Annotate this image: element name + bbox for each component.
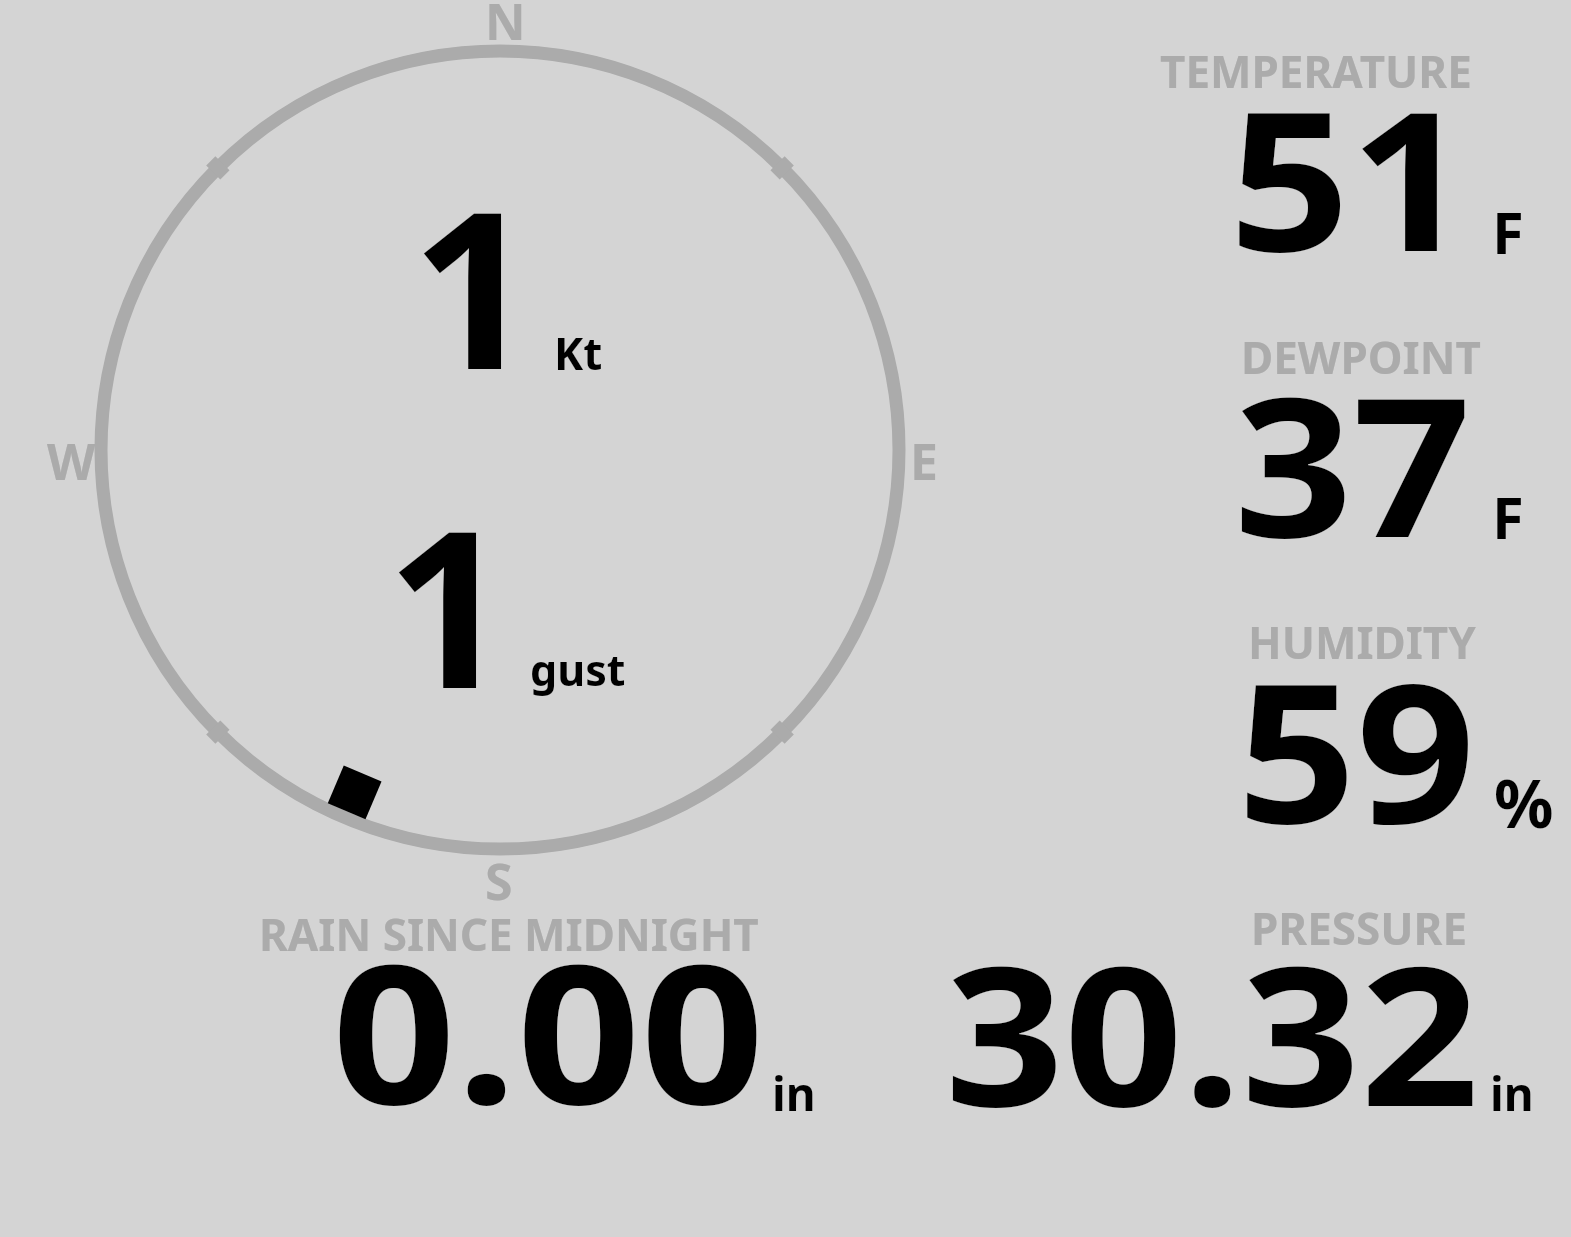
staticText: RAIN SINCE MIDNIGHT: [259, 904, 759, 964]
button[interactable]: Pressure 30.32 in: [890, 890, 1571, 1120]
staticText: %: [1494, 757, 1554, 847]
staticText: F: [1492, 477, 1524, 556]
button[interactable]: Wind direction and speed: [90, 40, 910, 860]
staticText: DEWPOINT: [1241, 327, 1481, 387]
staticText: in: [772, 1062, 816, 1125]
button[interactable]: Humidity 59 percent: [1100, 600, 1571, 850]
staticText: 1: [386, 455, 511, 752]
staticText: 37: [1234, 332, 1472, 594]
staticText: in: [1490, 1062, 1534, 1125]
button[interactable]: Rain since midnight 0.00 in: [230, 890, 830, 1120]
staticText: 59: [1237, 618, 1476, 880]
staticText: 1: [411, 136, 536, 433]
staticText: W: [47, 427, 96, 495]
staticText: 30.32: [945, 901, 1480, 1163]
staticText: gust: [530, 640, 626, 699]
staticText: E: [910, 427, 938, 495]
button[interactable]: Temperature 51 F: [1100, 30, 1571, 280]
staticText: HUMIDITY: [1248, 612, 1476, 672]
staticText: TEMPERATURE: [1160, 41, 1472, 101]
staticText: S: [485, 847, 513, 915]
button[interactable]: Dewpoint 37 F: [1100, 315, 1571, 565]
staticText: PRESSURE: [1251, 898, 1468, 958]
staticText: 51: [1229, 46, 1471, 308]
staticText: Kt: [554, 323, 603, 383]
staticText: 0.00: [332, 899, 765, 1161]
staticText: F: [1492, 192, 1524, 271]
staticText: N: [485, 0, 526, 55]
